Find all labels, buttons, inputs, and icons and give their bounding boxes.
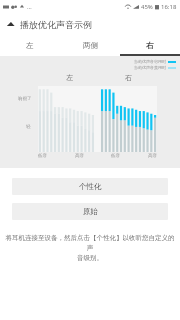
button[interactable]: 原始 <box>12 203 168 220</box>
staticText: 16:18 <box>161 3 177 11</box>
staticText: 右 <box>125 73 132 82</box>
staticText: 当前优声音启用时 <box>134 59 166 64</box>
button[interactable]: Back <box>0 14 20 34</box>
staticText: 45% <box>141 3 153 11</box>
staticText: 左 <box>26 41 34 50</box>
staticText: 将耳机连接至设备，然后点击【个性化】以收听您自定义的声 音级别。 <box>5 234 175 262</box>
staticText: 高音 <box>75 153 84 159</box>
button[interactable]: 右 <box>120 34 180 56</box>
staticText: 原始 <box>83 207 98 216</box>
button[interactable]: 个性化 <box>12 178 168 195</box>
staticText: 响很了 <box>18 96 32 102</box>
staticText: 左 <box>66 73 73 82</box>
staticText: 轻 <box>26 124 31 130</box>
staticText: 播放优化声音示例 <box>20 19 92 30</box>
staticText: 当前优声音禁用时 <box>134 65 166 70</box>
staticText: … <box>27 3 32 11</box>
staticText: 个性化 <box>79 182 102 191</box>
staticText: 低音 <box>38 153 47 159</box>
staticText: 高音 <box>148 153 157 159</box>
staticText: 低音 <box>111 153 120 159</box>
button[interactable]: 两侧 <box>60 34 120 56</box>
staticText: 两侧 <box>83 41 98 50</box>
button[interactable]: 左 <box>0 34 60 56</box>
staticText: 右 <box>146 41 154 50</box>
